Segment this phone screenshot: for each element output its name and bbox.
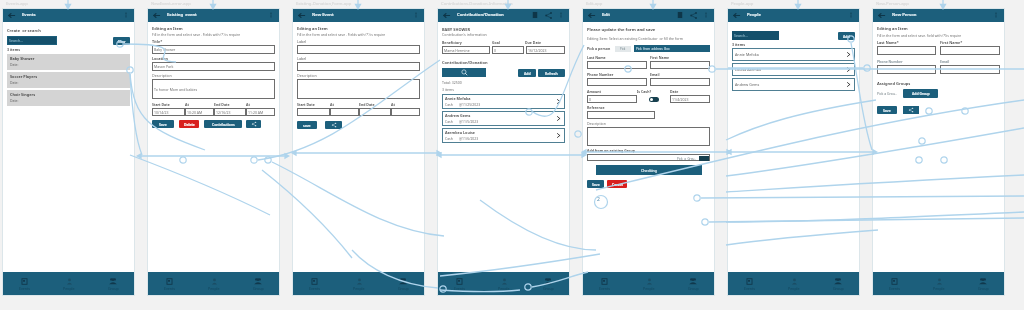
button[interactable]: Baby Shower	[7, 54, 130, 70]
button[interactable]: Group	[236, 272, 280, 296]
button[interactable]: New	[113, 37, 130, 45]
button[interactable]: Choir Singers	[7, 90, 130, 106]
other: More options	[267, 11, 275, 19]
button[interactable]: Notes	[530, 10, 540, 20]
button[interactable]: Back	[441, 10, 452, 21]
button[interactable]: Add Group	[903, 89, 938, 98]
button[interactable]: Back	[731, 10, 742, 21]
button[interactable]: Save	[152, 120, 174, 128]
button[interactable]: Search...	[7, 36, 57, 45]
button[interactable]: Annie Mefoka	[732, 48, 855, 61]
button[interactable]: Events	[727, 272, 772, 296]
button[interactable]: Group	[671, 272, 715, 296]
button[interactable]: Group	[381, 272, 425, 296]
button[interactable]: More options	[121, 10, 131, 20]
button[interactable]: Andrew Gems	[442, 111, 565, 126]
button[interactable]: Cancel	[607, 180, 627, 188]
button[interactable]: People	[627, 272, 671, 296]
button[interactable]: Contributions	[204, 120, 242, 128]
button[interactable]: Group	[91, 272, 135, 296]
button[interactable]: Group	[961, 272, 1005, 296]
button[interactable]: Share	[543, 10, 554, 21]
staticText: Search...	[734, 33, 748, 38]
staticText: Fill in the form and select save . Field…	[152, 32, 241, 37]
button[interactable]: People	[917, 272, 961, 296]
button[interactable]: Checking	[596, 165, 702, 175]
staticText: Search...	[9, 38, 23, 43]
button[interactable]: Pick from address Box	[634, 45, 710, 52]
staticText: Save	[883, 108, 891, 113]
staticText: @11/25/2023	[459, 102, 481, 107]
button[interactable]: People	[337, 272, 381, 296]
button[interactable]: Azembeu Louise	[442, 128, 565, 143]
button[interactable]: People	[482, 272, 526, 296]
button[interactable]: Andrew Gems	[732, 78, 855, 91]
button[interactable]: More options	[846, 10, 856, 20]
staticText: Last Name*	[877, 40, 936, 45]
button[interactable]: Add	[838, 32, 855, 40]
button[interactable]: Events	[292, 272, 337, 296]
staticText: Pick a Grou..	[877, 91, 897, 96]
staticText: Location	[152, 56, 168, 61]
button[interactable]: More options	[556, 10, 566, 20]
button[interactable]: Save	[877, 106, 897, 114]
button[interactable]: Share	[903, 106, 919, 114]
button[interactable]: Add	[518, 69, 536, 77]
button[interactable]: Back	[586, 10, 597, 21]
staticText: Last Name	[587, 55, 647, 60]
button[interactable]: Group	[526, 272, 570, 296]
button[interactable]: Events	[147, 272, 192, 296]
staticText: Contributions-Donation-Information	[441, 1, 513, 7]
button[interactable]: Share event	[246, 120, 261, 128]
staticText: Create or search	[7, 28, 41, 33]
other: More options	[412, 11, 420, 19]
button[interactable]: People	[192, 272, 236, 296]
button[interactable]: Events	[872, 272, 917, 296]
button[interactable]: Back	[6, 10, 17, 21]
staticText: Events	[889, 286, 901, 291]
button[interactable]: People	[772, 272, 816, 296]
button[interactable]: More options	[411, 10, 421, 20]
staticText: At	[246, 102, 275, 107]
button[interactable]: Delete	[179, 120, 199, 128]
staticText: At	[185, 102, 214, 107]
button[interactable]: Events	[582, 272, 627, 296]
button[interactable]: Back	[151, 10, 162, 21]
button[interactable]: Pick	[615, 46, 631, 52]
staticText: Save	[159, 122, 167, 127]
staticText: Date:	[10, 98, 19, 103]
button[interactable]: Louisa Azembo	[732, 63, 855, 76]
staticText: At	[391, 102, 420, 107]
staticText: To honor Mom and babies	[154, 87, 198, 92]
button[interactable]: Is cash toggle	[649, 97, 659, 102]
button[interactable]: Events	[437, 272, 482, 296]
button[interactable]: Notes	[675, 10, 685, 20]
other: More options	[557, 11, 565, 19]
button[interactable]: Pick a Grou..	[877, 91, 897, 96]
button[interactable]: Share	[325, 121, 342, 129]
button[interactable]: More options	[701, 10, 711, 20]
staticText: Edit	[602, 12, 675, 18]
button[interactable]: Share	[688, 10, 699, 21]
button[interactable]: Annie Mefaka	[442, 94, 565, 109]
button[interactable]: Back	[296, 10, 307, 21]
staticText: Is Cash?	[637, 89, 670, 94]
button[interactable]: Back	[876, 10, 887, 21]
staticText: Andrew Gems	[735, 82, 845, 87]
staticText: Editing an Item	[297, 26, 328, 31]
button[interactable]: Refresh	[538, 69, 565, 77]
staticText: Date	[670, 89, 710, 94]
button[interactable]: More options	[991, 10, 1001, 20]
button[interactable]: People	[47, 272, 91, 296]
staticText: People	[643, 286, 655, 291]
button[interactable]: Events	[2, 272, 47, 296]
button[interactable]: Search	[442, 68, 486, 77]
button[interactable]: Save	[587, 180, 604, 188]
button[interactable]: Group	[816, 272, 860, 296]
button[interactable]: Search...	[732, 31, 779, 40]
button[interactable]: Soccer Players	[7, 72, 130, 88]
other: Notes	[531, 11, 539, 19]
button[interactable]: More options	[266, 10, 276, 20]
button[interactable]: save	[297, 121, 317, 129]
